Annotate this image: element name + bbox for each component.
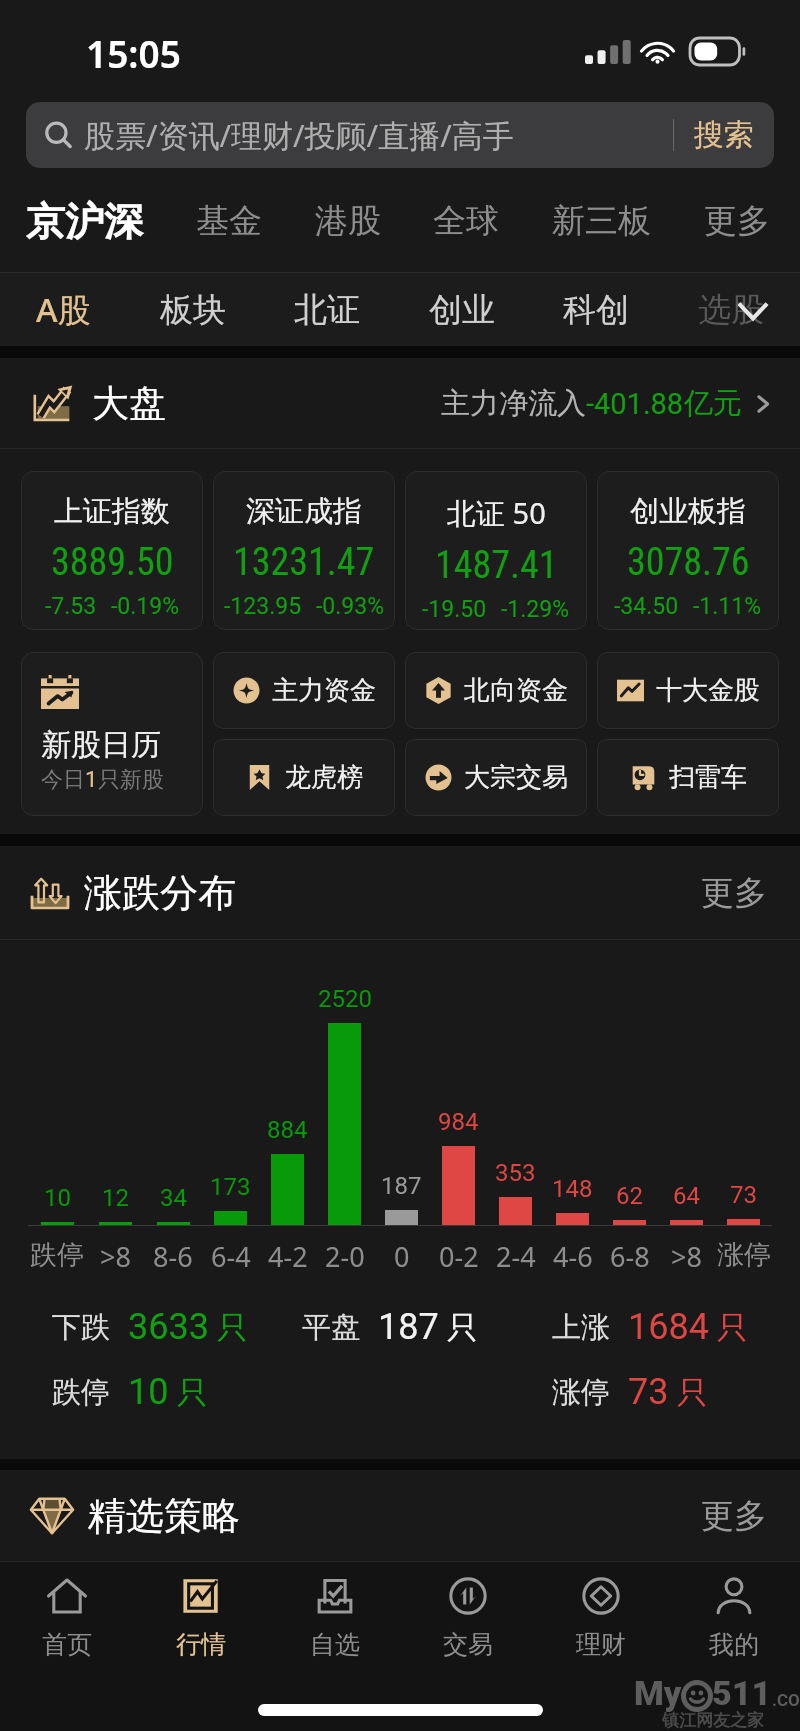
staticText: 1487.41 [435, 543, 558, 588]
button[interactable]: 基金 [196, 200, 262, 242]
staticText: -34.50 [614, 593, 679, 620]
staticText: 984 [438, 1108, 479, 1136]
button[interactable]: 大盘 [0, 358, 800, 449]
staticText: 亿元 [684, 385, 742, 422]
staticText: 股票/资讯/理财/投顾/直播/高手 [84, 114, 514, 156]
button[interactable]: 我的 [667, 1575, 800, 1660]
staticText: 187 [378, 1306, 439, 1348]
staticText: 行情 [176, 1629, 226, 1660]
staticText: >8 [100, 1238, 131, 1272]
button[interactable]: 首页 [0, 1575, 134, 1660]
staticText: 12 [102, 1184, 129, 1212]
staticText: -0.93% [316, 593, 385, 620]
staticText: 精选策略 [88, 1492, 240, 1540]
staticText: 北向资金 [464, 674, 568, 707]
staticText: 3889.50 [51, 540, 174, 585]
button[interactable]: 更多 [701, 1495, 767, 1537]
button[interactable]: 京沪深 [26, 197, 143, 246]
staticText: >8 [671, 1238, 702, 1272]
staticText: 大盘 [92, 380, 166, 427]
staticText: 只 [717, 1308, 748, 1347]
button[interactable]: 新股日历 [21, 652, 203, 816]
button[interactable]: 全球 [433, 200, 499, 242]
button[interactable]: 主力资金 [213, 652, 395, 729]
staticText: -1.11% [693, 593, 762, 620]
staticText: 15:05 [86, 28, 181, 78]
button[interactable]: 下跌 [52, 1306, 248, 1348]
staticText: 扫雷车 [669, 761, 747, 794]
button[interactable]: 平盘 [302, 1306, 478, 1348]
button[interactable]: 板块 [160, 289, 226, 331]
button[interactable]: 扫雷车 [597, 739, 779, 816]
staticText: 73 [730, 1181, 757, 1209]
staticText: -123.95 [224, 593, 302, 620]
staticText: 只 [677, 1373, 708, 1412]
staticText: 3078.76 [627, 540, 750, 585]
staticText: 只 [177, 1373, 208, 1412]
staticText: 选股 [698, 289, 764, 331]
button[interactable]: A股 [36, 287, 91, 332]
staticText: 交易 [443, 1629, 493, 1660]
staticText: 龙虎榜 [285, 761, 363, 794]
staticText: -401.88 [586, 387, 684, 421]
staticText: 884 [267, 1116, 308, 1144]
button[interactable]: 自选 [268, 1575, 401, 1660]
staticText: 主力资金 [272, 674, 376, 707]
staticText: 4-6 [553, 1238, 593, 1272]
button[interactable]: 展开 [731, 286, 775, 330]
button[interactable]: 创业 [429, 289, 495, 331]
button[interactable]: 上涨 [552, 1306, 748, 1348]
button[interactable]: 股票/资讯/理财/投顾/直播/高手 [26, 102, 774, 168]
button[interactable]: 北证 [294, 289, 360, 331]
button[interactable]: 港股 [315, 200, 381, 242]
staticText: 只 [447, 1308, 478, 1347]
button[interactable]: 更多 [704, 200, 770, 242]
staticText: 4-2 [268, 1238, 308, 1272]
staticText: 187 [381, 1172, 422, 1200]
staticText: 2-4 [496, 1238, 536, 1272]
button[interactable]: 北证 50 [405, 471, 587, 630]
button[interactable]: 更多 [701, 872, 767, 914]
button[interactable]: 涨停 [552, 1371, 708, 1413]
staticText: 8-6 [153, 1238, 193, 1272]
button[interactable]: 行情 [134, 1575, 268, 1660]
button[interactable]: 北向资金 [405, 652, 587, 729]
staticText: -19.50 [422, 596, 487, 623]
button[interactable]: 十大金股 [597, 652, 779, 729]
staticText: 自选 [310, 1629, 360, 1660]
staticText: 十大金股 [656, 674, 760, 707]
staticText: 1 [85, 767, 98, 793]
staticText: 创业板指 [630, 493, 746, 530]
staticText: 2-0 [325, 1238, 365, 1272]
staticText: 148 [552, 1175, 593, 1203]
staticText: -7.53 [45, 593, 97, 620]
button[interactable]: 深证成指 [213, 471, 395, 630]
button[interactable]: 跌停 [52, 1371, 208, 1413]
staticText: 涨跌分布 [84, 869, 236, 917]
button[interactable]: 龙虎榜 [213, 739, 395, 816]
button[interactable]: 大宗交易 [405, 739, 587, 816]
staticText: 大宗交易 [464, 761, 568, 794]
staticText: 平盘 [302, 1309, 360, 1346]
staticText: 新股日历 [41, 726, 161, 764]
staticText: 511 [712, 1673, 772, 1713]
staticText: 1684 [628, 1306, 709, 1348]
button[interactable]: 科创 [563, 289, 629, 331]
staticText: 2520 [318, 985, 372, 1013]
staticText: 13231.47 [233, 540, 375, 585]
staticText: 6-4 [211, 1238, 251, 1272]
button[interactable]: 理财 [534, 1575, 667, 1660]
staticText: 173 [210, 1173, 251, 1201]
staticText: 下跌 [52, 1309, 110, 1346]
button[interactable]: 交易 [401, 1575, 534, 1660]
staticText: 跌停 [30, 1238, 84, 1272]
button[interactable]: 新三板 [552, 200, 651, 242]
staticText: 0 [394, 1238, 410, 1272]
staticText: 10 [44, 1184, 71, 1212]
staticText: 今日 [41, 766, 85, 794]
staticText: 73 [628, 1371, 669, 1413]
button[interactable]: 上证指数 [21, 471, 203, 630]
button[interactable]: 创业板指 [597, 471, 779, 630]
staticText: 主力净流入 [441, 385, 586, 422]
staticText: 深证成指 [246, 493, 362, 530]
